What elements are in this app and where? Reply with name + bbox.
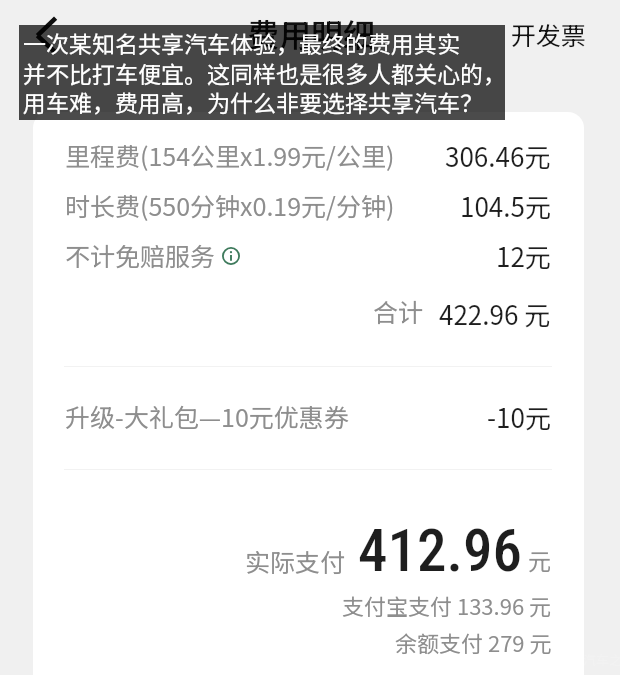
button[interactable]: 里程费(154公里x1.99元/公里)	[65, 137, 395, 173]
staticText: 支付宝支付 133.96 元	[342, 589, 552, 621]
staticText: 合计	[373, 293, 424, 329]
staticText: 306.46元	[445, 137, 551, 175]
button[interactable]: Back	[30, 12, 74, 56]
staticText: 里程费(154公里x1.99元/公里)	[65, 137, 395, 173]
button[interactable]: Info	[221, 246, 241, 266]
staticText: 升级-大礼包—10元优惠券	[65, 398, 349, 434]
staticText: 元	[528, 543, 551, 576]
staticText: 104.5元	[460, 187, 551, 225]
staticText: 并不比打车便宜。这同样也是很多人都关心的，	[23, 56, 506, 89]
staticText: 不计免赔服务	[65, 237, 216, 273]
staticText: -10元	[487, 398, 551, 436]
button[interactable]: 升级-大礼包—10元优惠券	[65, 398, 349, 434]
staticText: 一次某知名共享汽车体验，最终的费用其实	[23, 26, 460, 59]
staticText: 422.96 元	[439, 295, 551, 333]
staticText: 时长费(550分钟x0.19元/分钟)	[65, 187, 395, 223]
button[interactable]: 开发票	[511, 16, 587, 52]
staticText: 余额支付 279 元	[395, 626, 552, 658]
staticText: 开发票	[511, 16, 587, 52]
button[interactable]: 不计免赔服务	[65, 237, 216, 273]
staticText: 实际支付	[245, 543, 346, 579]
staticText: 用车难，费用高，为什么非要选择共享汽车？	[23, 85, 483, 118]
staticText: 412.96	[358, 516, 522, 585]
staticText: 12元	[496, 237, 551, 275]
button[interactable]: 费用明细	[247, 10, 376, 56]
button[interactable]: 时长费(550分钟x0.19元/分钟)	[65, 187, 395, 223]
staticText: 费用明细	[247, 10, 376, 56]
